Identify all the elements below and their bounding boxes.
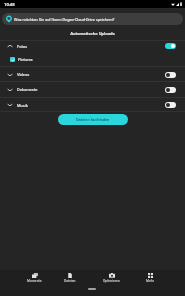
staticText: Dateien hochladen [76,117,110,122]
staticText: Videos [17,72,30,77]
button[interactable]: Mehr [132,273,168,283]
staticText: Musik [17,103,28,108]
staticText: Dateien [64,279,76,283]
button[interactable]: Optimieren [93,273,129,283]
button[interactable]: Was möchten Sie auf Ihrem Degoo-Cloud-Dr… [2,13,183,25]
button[interactable]: Musik [0,98,185,112]
button[interactable]: Fotos [0,40,185,52]
staticText: Automatische Uploads [70,31,115,36]
button[interactable]: Dateien hochladen [58,114,128,125]
staticText: Was möchten Sie auf Ihrem Degoo-Cloud-Dr… [14,17,115,22]
button[interactable]: Ein [165,43,176,49]
button[interactable]: Videos [0,67,185,82]
button[interactable]: Momente [16,273,52,283]
button[interactable]: Dateien [52,273,88,283]
staticText: Momente [27,279,42,283]
button[interactable]: Pictures [0,52,185,66]
staticText: Mehr [146,279,154,283]
staticText: Fotos [17,44,28,49]
button[interactable]: Aus [165,72,176,78]
button[interactable]: Aus [165,102,176,108]
button[interactable]: Aus [165,87,176,93]
staticText: Pictures [18,57,33,62]
staticText: Dokumente [17,87,38,92]
staticText: 10:48 [4,2,15,7]
button[interactable]: Dokumente [0,82,185,97]
staticText: Optimieren [103,279,120,283]
